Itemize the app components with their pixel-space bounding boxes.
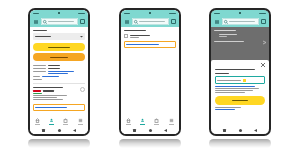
button[interactable]: Shop	[30, 116, 44, 126]
button[interactable]: Cart	[80, 19, 85, 24]
button[interactable]: Account	[135, 116, 149, 126]
other: Recents	[223, 129, 226, 132]
other: Home	[58, 129, 61, 132]
other: Home	[239, 129, 242, 132]
button[interactable]	[124, 41, 176, 48]
button[interactable]: Account	[44, 116, 58, 126]
button[interactable]: Shop	[121, 116, 135, 126]
other: Recents	[133, 129, 136, 132]
other: Recents	[42, 129, 45, 132]
button[interactable]: Menu	[124, 19, 130, 25]
button[interactable]: Cart	[171, 19, 176, 24]
button[interactable]	[222, 18, 259, 25]
button[interactable]	[33, 33, 85, 40]
other: Back	[254, 129, 257, 132]
button[interactable]: Menu	[214, 19, 220, 25]
button[interactable]: More	[73, 116, 88, 126]
button[interactable]	[33, 104, 85, 111]
button[interactable]	[215, 76, 265, 84]
button[interactable]: Bag	[149, 116, 164, 126]
button[interactable]: Select offer	[80, 87, 85, 92]
other: Back	[73, 129, 76, 132]
button[interactable]	[132, 18, 169, 25]
button[interactable]: Cart	[261, 19, 266, 24]
other: Home	[149, 129, 152, 132]
button[interactable]	[41, 18, 78, 25]
other: Back	[164, 129, 167, 132]
button[interactable]: Bag	[58, 116, 73, 126]
button[interactable]	[33, 43, 85, 51]
button[interactable]	[215, 96, 265, 105]
button[interactable]: More	[164, 116, 179, 126]
button[interactable]: Close	[261, 63, 265, 67]
button[interactable]: Menu	[33, 19, 39, 25]
button[interactable]: Select delivery	[124, 34, 128, 38]
button[interactable]	[33, 53, 85, 61]
